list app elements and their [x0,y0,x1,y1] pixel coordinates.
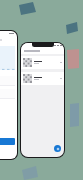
button[interactable] [21,56,64,69]
button[interactable] [0,46,15,70]
button[interactable]: Add [54,145,61,152]
button[interactable]: Submit [0,138,15,145]
button[interactable] [21,72,64,85]
